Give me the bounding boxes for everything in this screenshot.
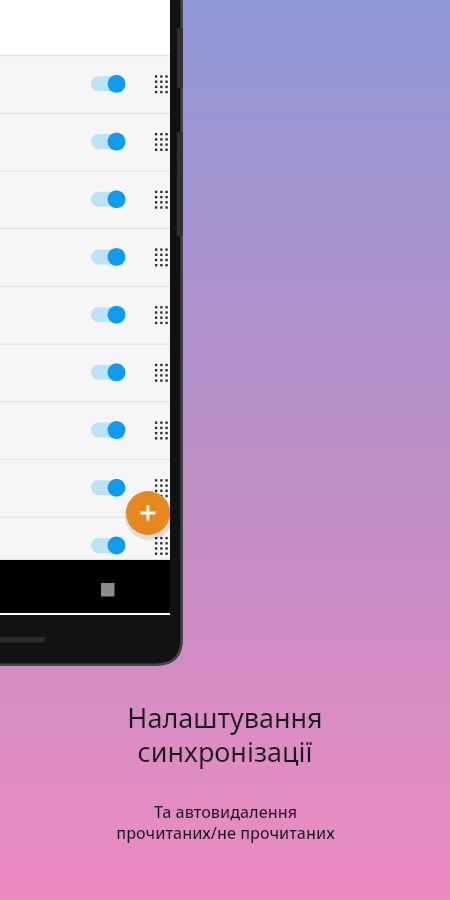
- button[interactable]: [0, 286, 170, 344]
- button[interactable]: [0, 55, 170, 113]
- button[interactable]: [0, 459, 170, 517]
- button[interactable]: [0, 344, 170, 402]
- button[interactable]: Add account: [126, 491, 170, 535]
- button[interactable]: [0, 113, 170, 171]
- button[interactable]: [0, 401, 170, 459]
- staticText: Та автовидалення прочитаних/не прочитани…: [116, 801, 335, 844]
- button[interactable]: [0, 517, 170, 575]
- button[interactable]: [0, 228, 170, 286]
- staticText: Налаштування синхронізації: [127, 699, 323, 770]
- button[interactable]: Recent apps: [93, 576, 122, 605]
- button[interactable]: [0, 170, 170, 228]
